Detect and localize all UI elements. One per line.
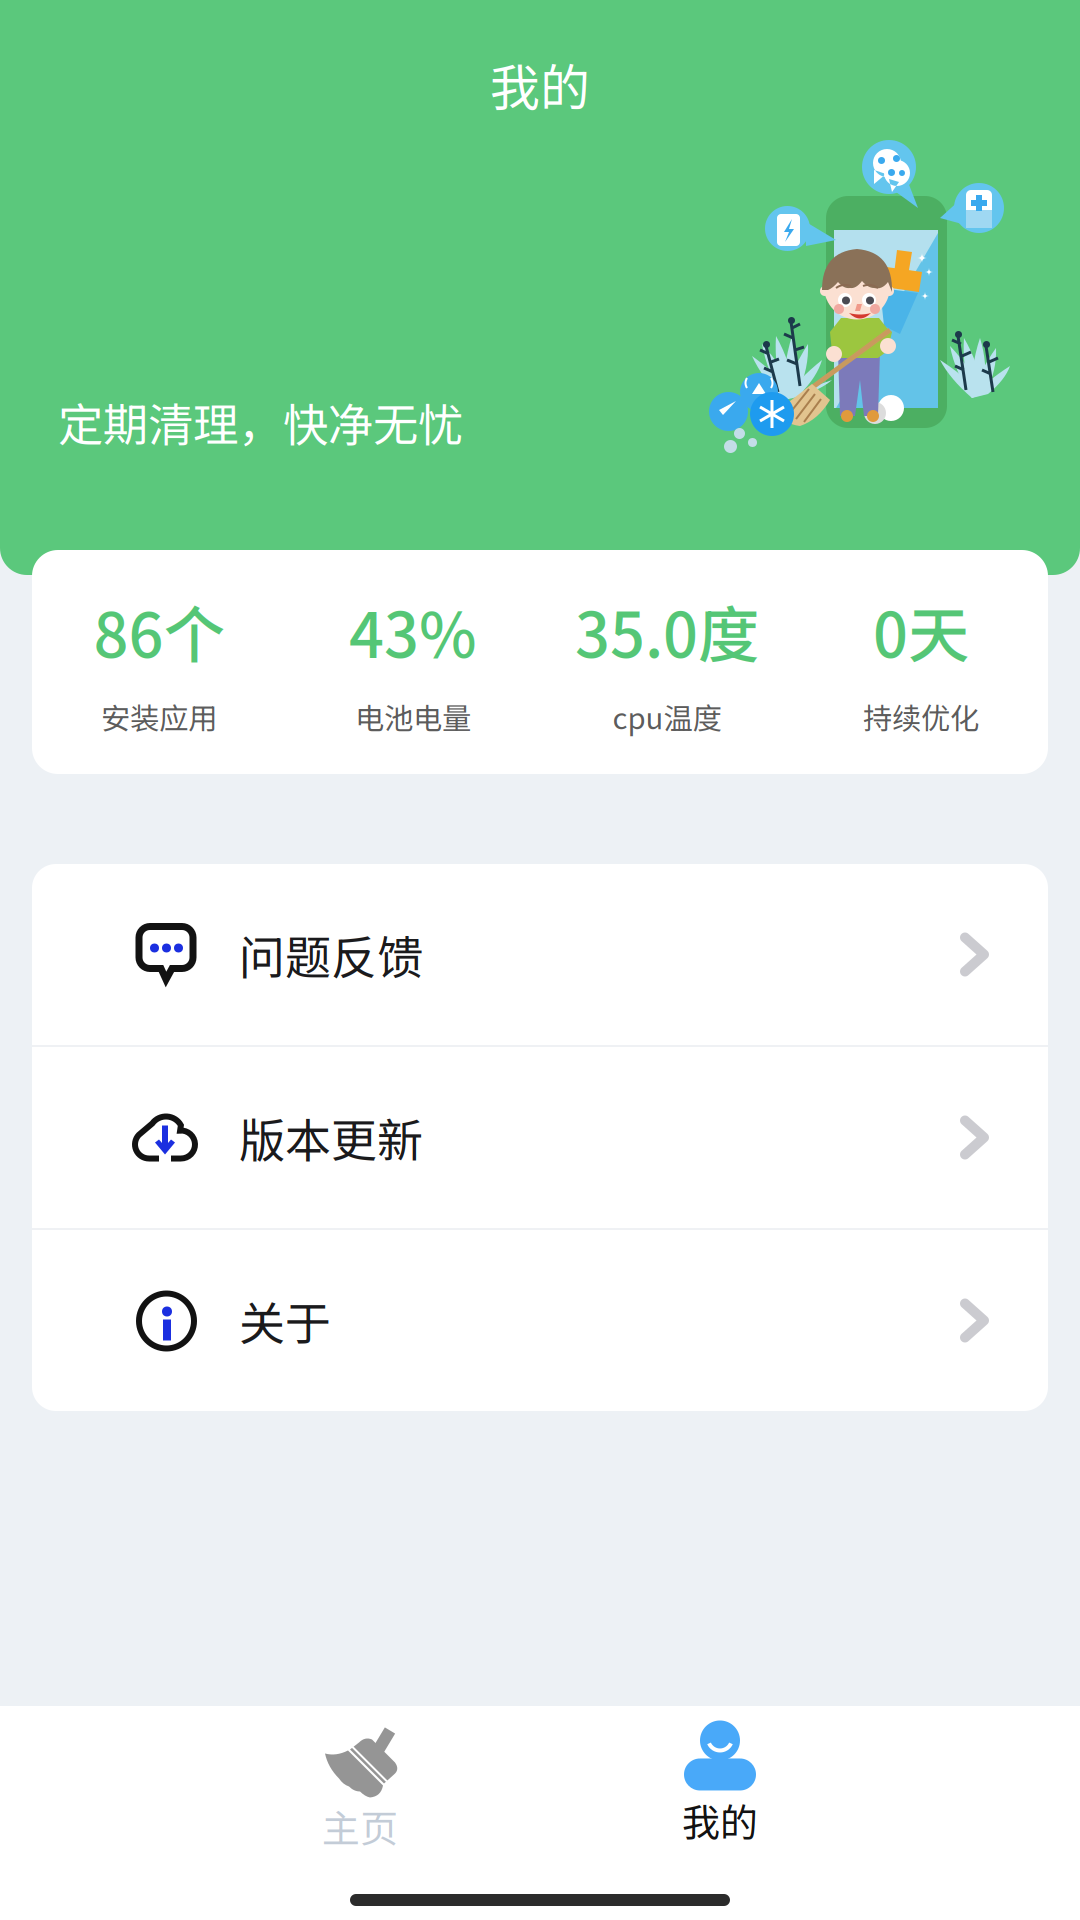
staticText: 持续优化 (863, 695, 979, 738)
staticText: 关于 (239, 1287, 331, 1354)
button[interactable]: 问题反馈 (32, 864, 1048, 1045)
staticText: 我的 (490, 48, 590, 120)
staticText: 我的 (682, 1792, 758, 1847)
button[interactable]: 主页 (260, 1714, 460, 1864)
staticText: 86个 (93, 586, 224, 675)
button[interactable]: 版本更新 (32, 1047, 1048, 1228)
staticText: 主页 (322, 1798, 398, 1853)
staticText: 问题反馈 (239, 921, 423, 988)
button[interactable]: 我的 (620, 1708, 820, 1858)
staticText: 0天 (873, 586, 969, 675)
staticText: 安装应用 (101, 695, 217, 738)
staticText: 35.0度 (575, 586, 759, 675)
staticText: 43% (349, 586, 477, 675)
staticText: 定期清理，快净无忧 (58, 389, 463, 455)
staticText: 电池电量 (355, 695, 471, 738)
staticText: 版本更新 (239, 1104, 423, 1171)
staticText: cpu温度 (612, 695, 721, 738)
button[interactable]: 关于 (32, 1230, 1048, 1411)
